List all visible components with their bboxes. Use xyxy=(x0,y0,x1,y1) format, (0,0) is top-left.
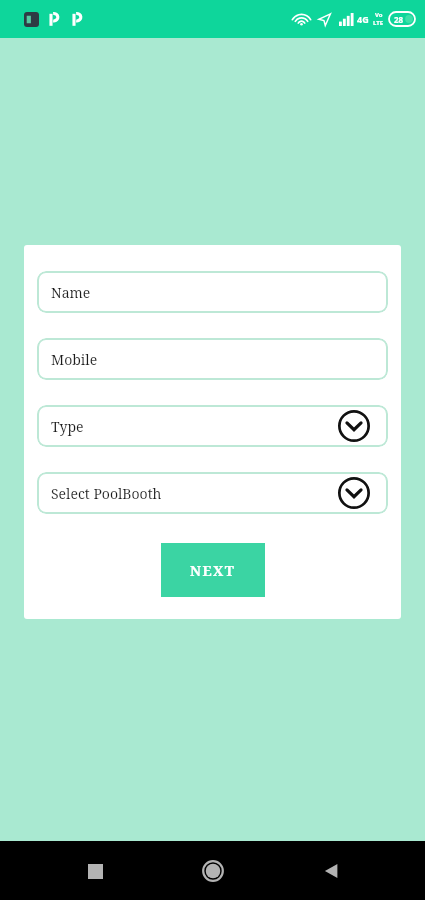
staticText: 4G xyxy=(357,13,369,25)
staticText: NEXT xyxy=(190,561,236,580)
button[interactable]: Recent apps xyxy=(71,847,119,895)
button[interactable]: Open Select PoolBooth dropdown xyxy=(338,477,370,509)
staticText: Mobile xyxy=(51,350,98,369)
staticText: LTE xyxy=(373,19,384,27)
staticText: 28 xyxy=(394,14,404,25)
staticText: Select PoolBooth xyxy=(51,484,162,503)
button[interactable]: Home xyxy=(189,847,237,895)
button[interactable]: Mobile xyxy=(37,338,388,380)
staticText: Name xyxy=(51,283,91,302)
button[interactable]: Select PoolBooth xyxy=(37,472,388,514)
staticText: Vo xyxy=(375,11,383,19)
button[interactable]: Type xyxy=(37,405,388,447)
staticText: Type xyxy=(51,417,84,436)
button[interactable]: Name xyxy=(37,271,388,313)
button[interactable]: Back xyxy=(307,847,355,895)
button[interactable]: NEXT xyxy=(161,543,265,597)
button[interactable]: Open Type dropdown xyxy=(338,410,370,442)
